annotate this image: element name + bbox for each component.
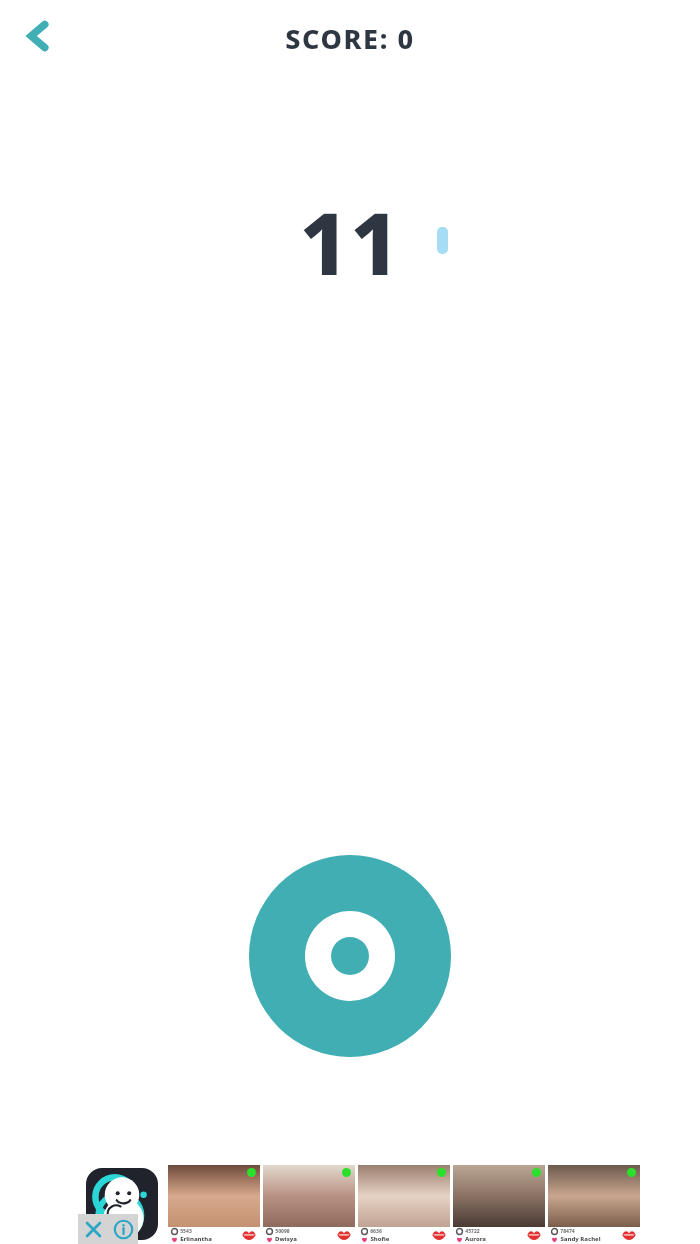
staticText: SCORE: 0 <box>285 20 415 57</box>
staticText: 45722 <box>465 1228 480 1235</box>
staticText: Dwisya <box>275 1235 297 1243</box>
button[interactable]: 50098 <box>263 1165 355 1243</box>
staticText: Erlinantha <box>180 1235 212 1243</box>
staticText: Sandy Rachel <box>560 1235 601 1243</box>
staticText: Shofie <box>370 1235 390 1243</box>
button[interactable]: Advertisement <box>0 1163 700 1244</box>
staticText: 50098 <box>275 1228 290 1235</box>
button[interactable]: Ad information <box>108 1214 138 1244</box>
staticText: 5543 <box>180 1228 192 1235</box>
button[interactable]: Close ad <box>78 1214 108 1244</box>
staticText: 78474 <box>560 1228 575 1235</box>
button[interactable]: Back <box>10 8 66 64</box>
button[interactable]: 5543 <box>168 1165 260 1243</box>
button[interactable]: 78474 <box>548 1165 640 1243</box>
staticText: Aurora <box>465 1235 486 1243</box>
button[interactable]: 6636 <box>358 1165 450 1243</box>
button[interactable]: Tap target <box>249 855 451 1057</box>
staticText: 11 <box>299 183 401 300</box>
staticText: 6636 <box>370 1228 382 1235</box>
button[interactable]: 45722 <box>453 1165 545 1243</box>
